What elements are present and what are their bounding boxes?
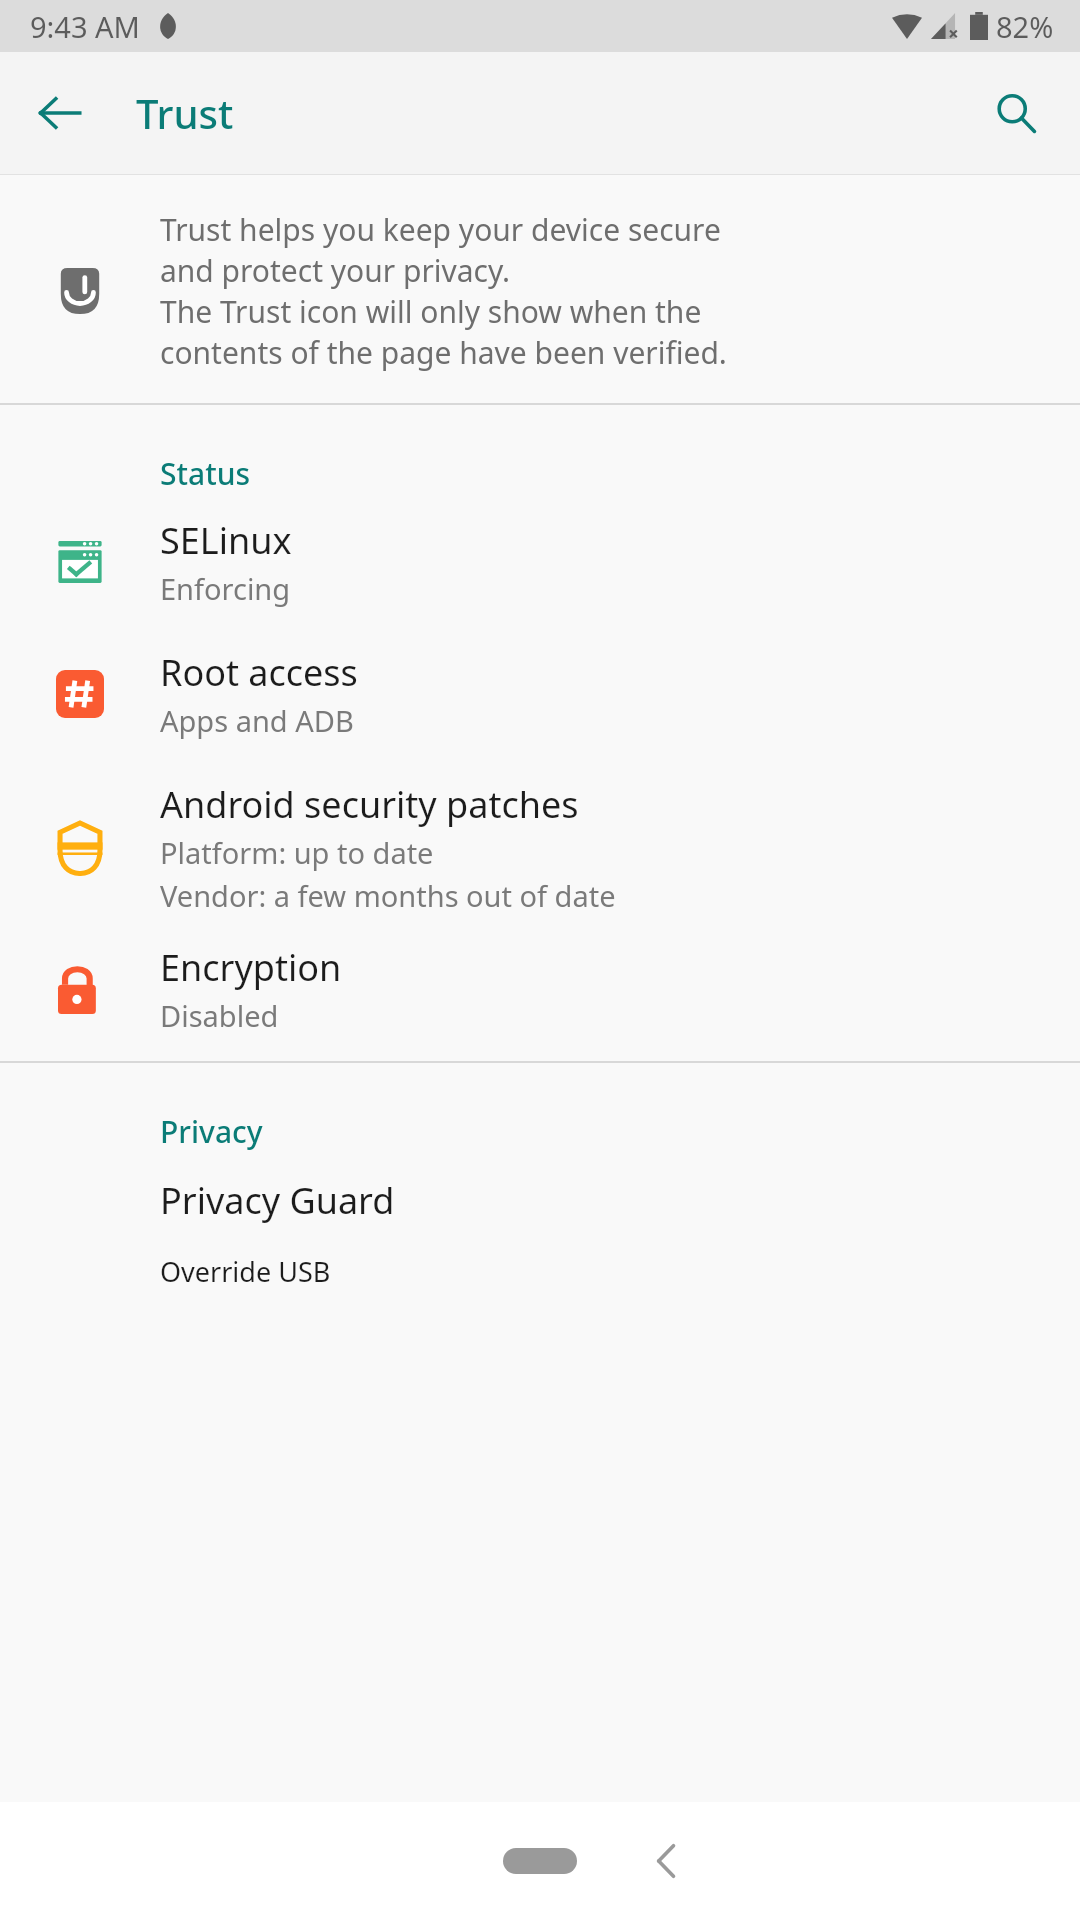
button[interactable]: Home — [487, 1832, 593, 1890]
staticText: Root access — [160, 648, 358, 697]
button[interactable]: Search — [974, 71, 1058, 155]
staticText: Override USB — [160, 1253, 331, 1283]
button[interactable]: SELinux — [0, 506, 1080, 634]
staticText: The Trust icon will only show when the — [160, 291, 702, 332]
button[interactable]: Encryption — [0, 929, 1080, 1061]
staticText: contents of the page have been verified. — [160, 332, 727, 373]
button[interactable]: Android security patches — [0, 766, 1080, 929]
staticText: Status — [160, 453, 251, 494]
staticText: SELinux — [160, 516, 292, 565]
staticText: Encryption — [160, 943, 342, 992]
button[interactable]: Back — [18, 71, 102, 155]
staticText: 9:43 AM — [30, 7, 140, 46]
staticText: Android security patches — [160, 780, 579, 829]
staticText: Trust — [136, 86, 234, 140]
staticText: and protect your privacy. — [160, 250, 511, 291]
staticText: 82% — [996, 7, 1054, 46]
staticText: Privacy Guard — [160, 1176, 395, 1225]
staticText: Trust helps you keep your device secure — [160, 209, 721, 250]
staticText: Vendor: a few months out of date — [160, 876, 616, 915]
staticText: Apps and ADB — [160, 701, 354, 740]
button[interactable]: Root access — [0, 634, 1080, 766]
staticText: Enforcing — [160, 569, 291, 608]
button[interactable]: Privacy Guard — [0, 1164, 1080, 1253]
staticText: Privacy — [160, 1111, 263, 1152]
staticText: Disabled — [160, 996, 279, 1035]
button[interactable]: Back — [634, 1821, 700, 1901]
staticText: Platform: up to date — [160, 833, 434, 872]
